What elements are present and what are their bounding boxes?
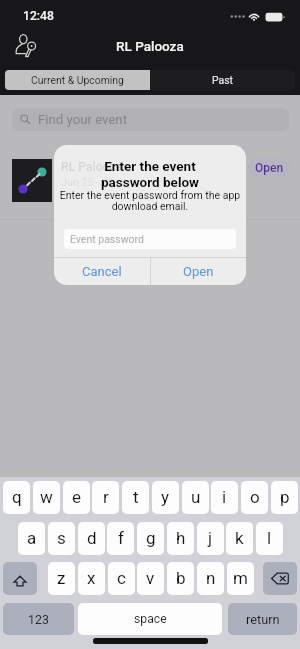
button[interactable]: q	[3, 481, 30, 514]
staticText: l	[267, 528, 272, 548]
staticText: RL Palooza	[116, 38, 184, 54]
staticText: Enter the event password below	[54, 158, 246, 190]
button[interactable]: Shift	[3, 562, 37, 595]
staticText: n	[206, 568, 216, 588]
staticText: s	[57, 528, 66, 548]
staticText: w	[40, 487, 53, 507]
staticText: i	[222, 487, 227, 507]
button[interactable]: r	[92, 481, 119, 514]
button[interactable]: space	[78, 603, 222, 635]
staticText: Event password	[70, 233, 144, 245]
button[interactable]: h	[167, 522, 194, 555]
staticText: Jun 25 - 28	[61, 176, 115, 189]
staticText: Past	[212, 74, 233, 86]
button[interactable]: Backspace	[263, 562, 297, 595]
button[interactable]: p	[271, 481, 298, 514]
button[interactable]: n	[197, 562, 224, 595]
staticText: g	[146, 528, 156, 548]
staticText: Enter the event password from the app do…	[55, 189, 245, 213]
staticText: e	[72, 487, 82, 507]
staticText: a	[27, 528, 37, 548]
staticText: Current & Upcoming	[31, 74, 124, 86]
button[interactable]: Open	[248, 159, 290, 176]
button[interactable]: f	[107, 522, 134, 555]
button[interactable]: Event password	[64, 229, 236, 249]
staticText: c	[117, 568, 126, 588]
button[interactable]: e	[63, 481, 90, 514]
staticText: Find your event	[38, 112, 127, 127]
button[interactable]: RL Palooza	[0, 136, 300, 220]
button[interactable]: t	[122, 481, 149, 514]
staticText: t	[133, 487, 139, 507]
button[interactable]: Current & Upcoming	[5, 70, 150, 90]
staticText: Cancel	[82, 264, 122, 279]
button[interactable]: s	[48, 522, 75, 555]
button[interactable]: Find your event	[12, 108, 289, 131]
button[interactable]: b	[167, 562, 194, 595]
staticText: 123	[28, 612, 49, 627]
button[interactable]: z	[48, 562, 75, 595]
staticText: r	[103, 487, 109, 507]
staticText: m	[233, 568, 248, 588]
button[interactable]: u	[182, 481, 209, 514]
staticText: h	[176, 528, 186, 548]
staticText: j	[208, 528, 213, 548]
button[interactable]: Account	[11, 30, 41, 60]
staticText: Open	[183, 264, 214, 279]
staticText: y	[161, 487, 170, 507]
staticText: z	[57, 568, 66, 588]
staticText: space	[134, 612, 167, 626]
button[interactable]: return	[228, 603, 297, 635]
button[interactable]: g	[137, 522, 164, 555]
button[interactable]: c	[108, 562, 135, 595]
staticText: v	[146, 568, 155, 588]
button[interactable]: y	[152, 481, 179, 514]
staticText: b	[176, 568, 186, 588]
staticText: d	[87, 528, 97, 548]
button[interactable]: a	[18, 522, 45, 555]
button[interactable]: 123	[3, 603, 74, 635]
staticText: return	[246, 612, 280, 627]
button[interactable]: k	[226, 522, 253, 555]
staticText: x	[87, 568, 96, 588]
button[interactable]: j	[197, 522, 224, 555]
button[interactable]: v	[137, 562, 164, 595]
button[interactable]: Cancel	[54, 258, 150, 285]
button[interactable]: o	[241, 481, 268, 514]
button[interactable]: d	[78, 522, 105, 555]
button[interactable]: l	[256, 522, 283, 555]
button[interactable]: Past	[150, 70, 295, 90]
staticText: f	[118, 528, 124, 548]
staticText: 12:48	[23, 9, 54, 23]
staticText: u	[191, 487, 201, 507]
button[interactable]: w	[33, 481, 60, 514]
staticText: Open	[255, 161, 284, 175]
staticText: RL Palooza	[61, 160, 123, 174]
staticText: q	[12, 487, 22, 507]
staticText: p	[280, 487, 290, 507]
staticText: k	[235, 528, 244, 548]
button[interactable]: x	[78, 562, 105, 595]
button[interactable]: m	[227, 562, 254, 595]
button[interactable]: i	[211, 481, 238, 514]
staticText: o	[250, 487, 260, 507]
button[interactable]: Open	[151, 258, 246, 285]
